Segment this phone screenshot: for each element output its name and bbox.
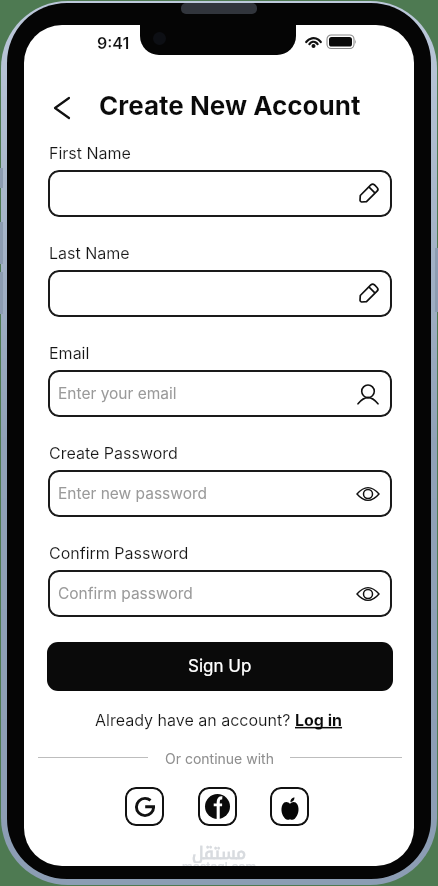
button[interactable] bbox=[125, 787, 164, 826]
staticText: Or continue with bbox=[165, 750, 274, 767]
staticText: Confirm password bbox=[58, 584, 193, 603]
staticText: Already have an account? bbox=[95, 710, 295, 729]
staticText: First Name bbox=[49, 143, 131, 162]
button[interactable]: Enter new password bbox=[48, 470, 392, 517]
staticText: Create Password bbox=[49, 443, 178, 462]
staticText: 9:41 bbox=[97, 33, 130, 52]
staticText: Sign Up bbox=[188, 656, 252, 677]
button[interactable]: Sign Up bbox=[47, 642, 393, 691]
button[interactable] bbox=[48, 170, 392, 217]
staticText: مستقل bbox=[192, 837, 247, 863]
staticText: Enter your email bbox=[58, 384, 177, 403]
staticText: Log in bbox=[295, 710, 343, 729]
button[interactable] bbox=[270, 787, 309, 826]
button[interactable] bbox=[42, 88, 82, 128]
button[interactable] bbox=[48, 270, 392, 317]
staticText: mostaql.com bbox=[182, 859, 257, 866]
staticText: Confirm Password bbox=[49, 543, 189, 562]
button[interactable]: Confirm password bbox=[48, 570, 392, 617]
staticText: Create New Account bbox=[99, 90, 361, 121]
button[interactable]: Log in bbox=[295, 710, 343, 729]
button[interactable]: Enter your email bbox=[48, 370, 392, 417]
staticText: Enter new password bbox=[58, 484, 208, 503]
staticText: Email bbox=[49, 343, 90, 362]
button[interactable] bbox=[198, 787, 237, 826]
staticText: Last Name bbox=[49, 243, 130, 262]
